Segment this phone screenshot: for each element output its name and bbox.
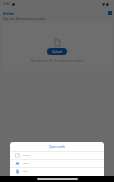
button[interactable]: Menu bbox=[108, 11, 112, 15]
staticText: Files bbox=[23, 170, 28, 173]
staticText: Photos bbox=[23, 154, 31, 157]
staticText: 9:30 bbox=[3, 2, 10, 6]
button[interactable]: Photos bbox=[10, 151, 104, 159]
button[interactable]: Drive bbox=[10, 159, 104, 167]
staticText: filebin bbox=[3, 11, 15, 16]
staticText: Open with bbox=[49, 145, 65, 149]
staticText: Upload bbox=[52, 50, 62, 54]
staticText: Drive bbox=[23, 162, 29, 165]
staticText: Max file size 5 GB · No registration nee… bbox=[31, 59, 83, 63]
staticText: Easy · fast file sharing for everyone. bbox=[3, 17, 47, 21]
button[interactable]: Files bbox=[10, 167, 104, 175]
button[interactable]: Upload bbox=[47, 48, 67, 55]
